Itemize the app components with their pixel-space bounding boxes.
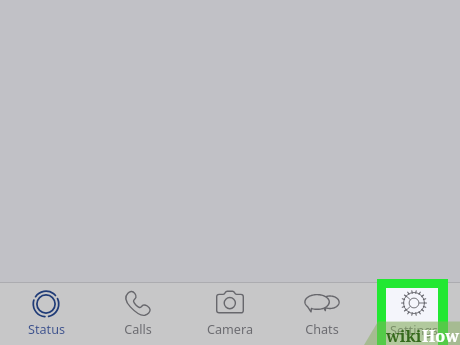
button[interactable]: Settings [386, 288, 438, 322]
button[interactable]: Calls [92, 283, 184, 345]
button[interactable]: Camera [184, 283, 276, 345]
staticText: Calls [124, 321, 152, 338]
button[interactable]: Status [0, 283, 92, 345]
button[interactable]: Settings [368, 283, 460, 345]
staticText: wiki [386, 325, 422, 345]
button[interactable]: Chats [276, 283, 368, 345]
staticText: Chats [305, 321, 339, 338]
staticText: Status [28, 321, 65, 338]
staticText: Settings [390, 321, 438, 338]
staticText: How [422, 325, 460, 345]
staticText: Settings [388, 322, 440, 339]
staticText: Camera [207, 321, 253, 338]
